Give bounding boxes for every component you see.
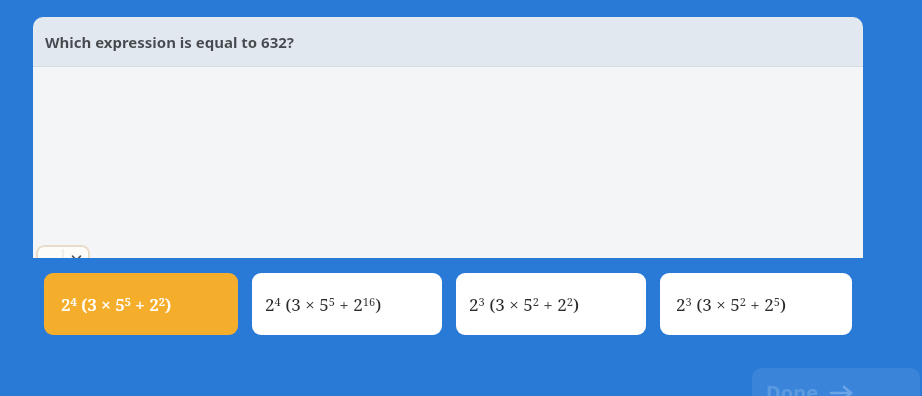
button[interactable]: 23 (3 × 52 + 25) bbox=[660, 273, 852, 335]
staticText: 24 (3 × 55 + 216) bbox=[265, 293, 382, 316]
staticText: Which expression is equal to 632? bbox=[45, 32, 295, 52]
button[interactable]: 23 (3 × 52 + 22) bbox=[456, 273, 646, 335]
button[interactable]: 24 (3 × 55 + 22) bbox=[44, 273, 238, 335]
button[interactable]: Math operator keypad bbox=[36, 245, 90, 301]
staticText: 23 (3 × 52 + 25) bbox=[676, 293, 787, 316]
button[interactable]: 24 (3 × 55 + 216) bbox=[252, 273, 442, 335]
button[interactable]: Done bbox=[752, 368, 920, 396]
staticText: 23 (3 × 52 + 22) bbox=[469, 293, 580, 316]
staticText: Done bbox=[766, 379, 819, 396]
staticText: 24 (3 × 55 + 22) bbox=[61, 293, 172, 316]
